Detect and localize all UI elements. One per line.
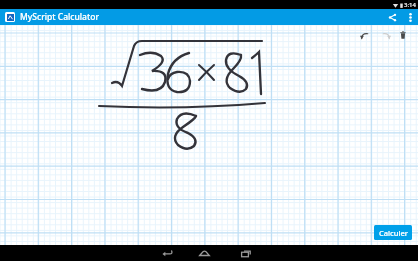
staticText: Calculer xyxy=(379,228,408,238)
button[interactable]: More options xyxy=(402,9,418,25)
button[interactable]: Share xyxy=(382,9,402,25)
button[interactable]: Recent apps xyxy=(225,245,267,261)
staticText: MyScript Calculator xyxy=(20,11,100,23)
button[interactable]: Delete xyxy=(395,27,411,43)
button[interactable]: Calculer xyxy=(374,225,412,240)
staticText: 3:14 xyxy=(404,1,416,9)
button[interactable]: Back xyxy=(151,245,183,261)
button[interactable]: Undo xyxy=(355,27,375,43)
button[interactable]: Home xyxy=(183,245,225,261)
button[interactable]: Redo xyxy=(375,27,395,43)
